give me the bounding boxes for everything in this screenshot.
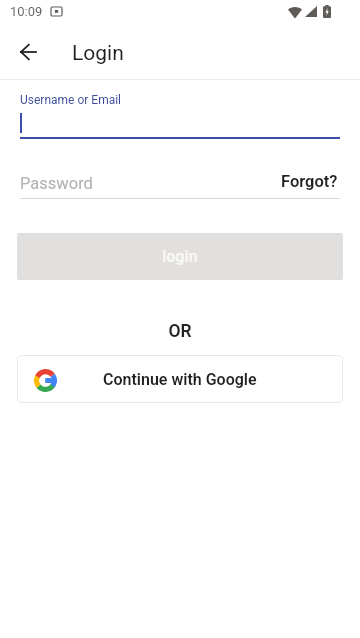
button[interactable]: Back [10, 34, 46, 70]
staticText: Username or Email [20, 93, 122, 107]
button[interactable]: Forgot? [281, 172, 338, 191]
staticText: Forgot? [281, 172, 338, 191]
staticText: login [162, 247, 198, 266]
staticText: Continue with Google [103, 370, 257, 389]
button[interactable]: Continue with Google [17, 355, 343, 403]
staticText: Login [72, 41, 124, 66]
staticText: OR [0, 321, 360, 342]
staticText: Password [20, 174, 93, 193]
staticText: 10:09 [10, 4, 43, 19]
